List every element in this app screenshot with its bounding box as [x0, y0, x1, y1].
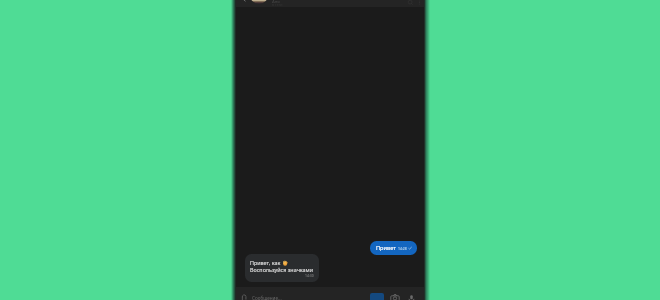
button[interactable]: Attach file: [238, 292, 251, 300]
button[interactable]: Camera: [387, 290, 403, 300]
staticText: Привет, как: [250, 259, 281, 266]
staticText: Привет: [376, 244, 396, 252]
button[interactable]: Привет: [370, 241, 417, 255]
staticText: в сети: [272, 2, 283, 7]
staticText: 14:30: [305, 273, 314, 278]
button[interactable]: Record voice message: [403, 290, 419, 300]
staticText: Аня: [272, 0, 280, 5]
staticText: Сообщение...: [252, 295, 367, 300]
staticText: 14:28: [398, 246, 407, 251]
button[interactable]: Привет, как: [245, 254, 319, 282]
staticText: Воспользуйся значками: [250, 266, 314, 273]
button[interactable]: Stickers: [367, 290, 387, 300]
button[interactable]: Back: [240, 0, 249, 4]
